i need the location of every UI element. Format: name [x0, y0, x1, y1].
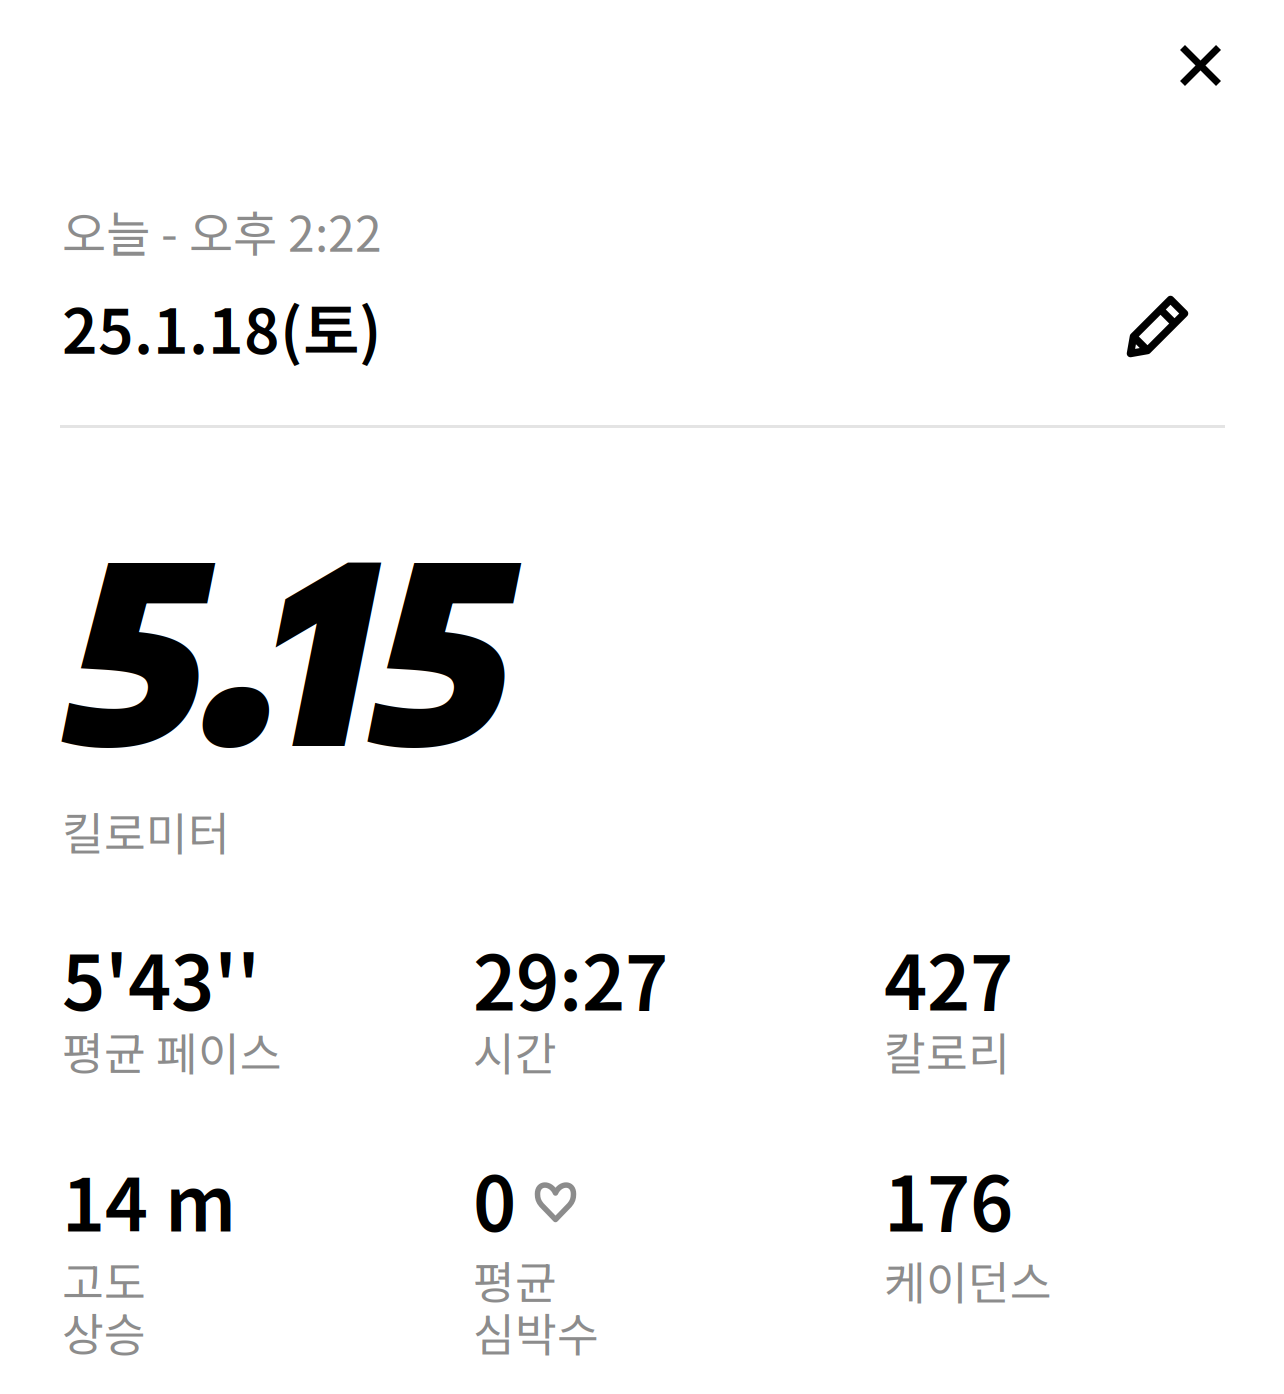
staticText: 5.15 — [53, 492, 497, 800]
staticText: 칼로리 — [884, 1018, 1010, 1084]
staticText: 0 — [473, 1145, 516, 1253]
staticText: 킬로미터 — [62, 798, 230, 864]
staticText: 25.1.18(토) — [62, 282, 382, 371]
staticText: 평균 — [473, 1247, 557, 1313]
button[interactable]: Close — [1145, 0, 1284, 121]
staticText: 고도 — [62, 1247, 146, 1313]
staticText: 상승 — [62, 1299, 146, 1365]
staticText: 427 — [884, 924, 1013, 1032]
button[interactable]: Edit — [1115, 288, 1222, 375]
staticText: 5'43'' — [62, 924, 260, 1032]
staticText: 케이던스 — [884, 1247, 1052, 1313]
staticText: 오늘 - 오후 2:22 — [62, 196, 382, 265]
staticText: 176 — [884, 1145, 1013, 1253]
staticText: 시간 — [473, 1018, 557, 1084]
staticText: 평균 페이스 — [62, 1018, 282, 1084]
staticText: 14 m — [62, 1145, 236, 1253]
staticText: 심박수 — [473, 1299, 599, 1365]
staticText: 29:27 — [473, 924, 668, 1032]
